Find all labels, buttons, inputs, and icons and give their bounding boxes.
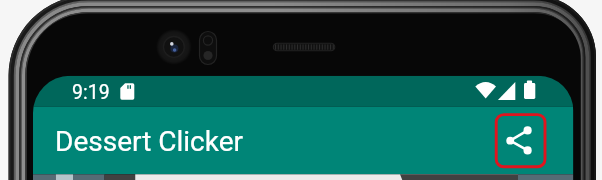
staticText: Dessert Clicker <box>55 125 244 158</box>
staticText: 9:19 <box>72 81 110 104</box>
button[interactable]: Share <box>495 113 546 167</box>
